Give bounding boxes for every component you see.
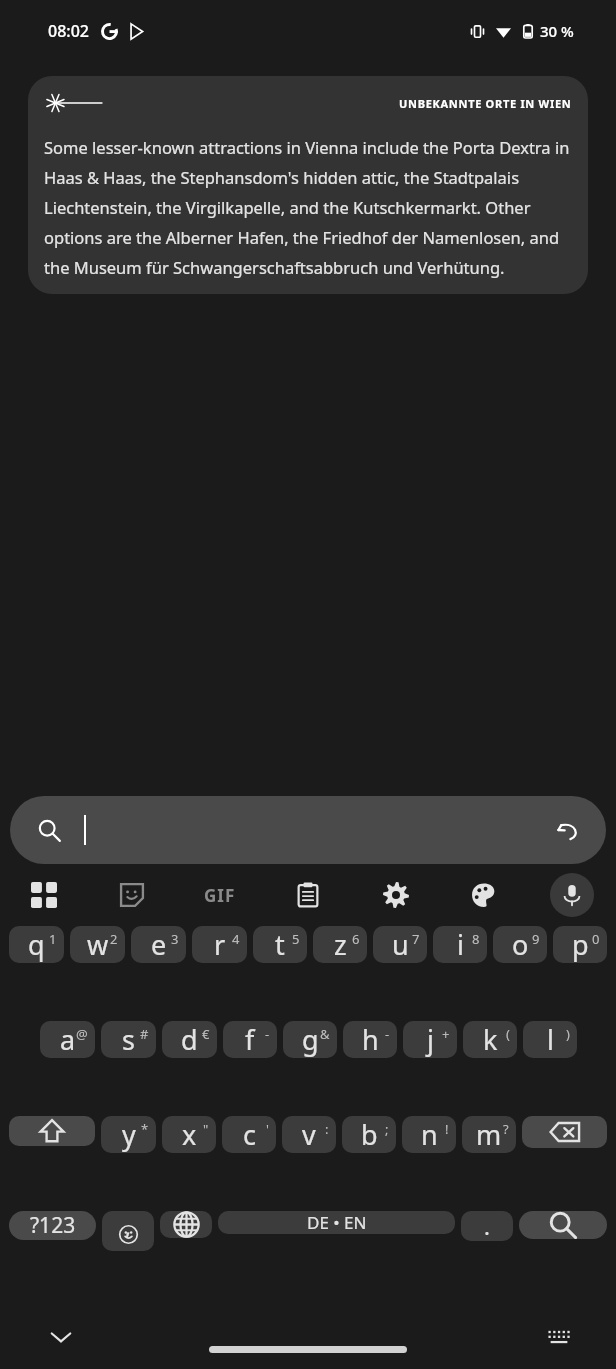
staticText: d: [181, 1021, 198, 1058]
other: Search: [38, 819, 61, 842]
staticText: k: [483, 1021, 498, 1058]
staticText: €: [202, 1025, 210, 1043]
button[interactable]: Shift: [9, 1116, 95, 1146]
button[interactable]: s: [101, 1021, 156, 1058]
button[interactable]: c: [222, 1116, 276, 1153]
button[interactable]: x: [162, 1116, 216, 1153]
staticText: u: [392, 926, 409, 963]
staticText: 7: [412, 930, 420, 948]
staticText: ,: [125, 1211, 131, 1241]
staticText: i: [457, 926, 464, 963]
staticText: f: [245, 1021, 255, 1058]
button[interactable]: Search: [10, 796, 606, 864]
button[interactable]: p: [553, 926, 607, 963]
staticText: @: [76, 1025, 88, 1043]
button[interactable]: Clipboard: [264, 882, 352, 908]
staticText: v: [302, 1116, 316, 1153]
staticText: a: [60, 1021, 76, 1058]
other: Undo: [556, 818, 580, 842]
button[interactable]: ?123: [9, 1211, 96, 1240]
staticText: *: [141, 1120, 149, 1138]
button[interactable]: Apps: [0, 882, 88, 908]
button[interactable]: Themes: [440, 882, 528, 908]
staticText: -: [265, 1025, 270, 1043]
staticText: (: [506, 1025, 510, 1043]
staticText: 08:02: [48, 20, 89, 42]
staticText: w: [87, 926, 109, 963]
staticText: ': [266, 1120, 269, 1138]
staticText: ": [203, 1120, 209, 1138]
staticText: 30 %: [540, 21, 574, 41]
button[interactable]: w: [70, 926, 125, 963]
staticText: !: [445, 1120, 449, 1138]
staticText: DE • EN: [307, 1211, 367, 1234]
button[interactable]: h: [343, 1021, 397, 1058]
button[interactable]: f: [223, 1021, 277, 1058]
staticText: 3: [171, 930, 179, 948]
staticText: ;: [385, 1120, 389, 1138]
button[interactable]: b: [342, 1116, 396, 1153]
staticText: m: [476, 1116, 502, 1153]
staticText: .: [484, 1211, 490, 1241]
button[interactable]: Switch keyboard: [542, 1320, 576, 1354]
staticText: q: [28, 926, 45, 963]
staticText: 5: [292, 930, 300, 948]
button[interactable]: j: [403, 1021, 457, 1058]
button[interactable]: Backspace: [522, 1116, 607, 1148]
button[interactable]: z: [313, 926, 367, 963]
staticText: e: [151, 926, 167, 963]
button[interactable]: d: [162, 1021, 217, 1058]
staticText: o: [512, 926, 529, 963]
button[interactable]: Stickers: [88, 882, 176, 908]
staticText: p: [572, 926, 589, 963]
button[interactable]: Change language: [160, 1211, 212, 1238]
staticText: r: [214, 926, 226, 963]
staticText: ): [566, 1025, 570, 1043]
button[interactable]: a: [40, 1021, 95, 1058]
button[interactable]: Close keyboard: [44, 1320, 78, 1354]
staticText: 2: [110, 930, 118, 948]
staticText: z: [334, 926, 347, 963]
staticText: 4: [232, 930, 240, 948]
staticText: GIF: [204, 884, 236, 907]
button[interactable]: Settings: [352, 882, 440, 908]
button[interactable]: u: [373, 926, 427, 963]
button[interactable]: o: [493, 926, 547, 963]
button[interactable]: k: [463, 1021, 517, 1058]
button[interactable]: v: [282, 1116, 336, 1153]
staticText: #: [140, 1025, 149, 1043]
button[interactable]: m: [462, 1116, 516, 1153]
button[interactable]: .: [461, 1211, 513, 1241]
staticText: t: [275, 926, 285, 963]
button[interactable]: q: [9, 926, 64, 963]
staticText: j: [427, 1021, 434, 1058]
button[interactable]: r: [192, 926, 247, 963]
staticText: x: [182, 1116, 197, 1153]
button[interactable]: i: [433, 926, 487, 963]
staticText: &: [320, 1025, 330, 1043]
staticText: h: [362, 1021, 379, 1058]
staticText: 0: [592, 930, 600, 948]
button[interactable]: t: [253, 926, 307, 963]
button[interactable]: e: [131, 926, 186, 963]
button[interactable]: DE • EN: [218, 1211, 455, 1234]
button[interactable]: UNBEKANNTE ORTE IN WIEN: [28, 76, 588, 294]
staticText: 9: [532, 930, 540, 948]
staticText: c: [243, 1116, 256, 1153]
button[interactable]: GIF: [176, 884, 264, 907]
staticText: -: [385, 1025, 390, 1043]
button[interactable]: g: [283, 1021, 337, 1058]
staticText: g: [302, 1021, 319, 1058]
staticText: ?: [503, 1120, 509, 1138]
button[interactable]: Voice input: [528, 873, 616, 917]
staticText: UNBEKANNTE ORTE IN WIEN: [399, 96, 572, 111]
button[interactable]: n: [402, 1116, 456, 1153]
staticText: y: [122, 1116, 136, 1153]
button[interactable]: Search: [519, 1211, 607, 1239]
staticText: l: [547, 1021, 554, 1058]
staticText: +: [442, 1025, 450, 1043]
staticText: ?123: [30, 1211, 76, 1240]
button[interactable]: Emoji: [102, 1211, 154, 1251]
button[interactable]: y: [101, 1116, 156, 1153]
button[interactable]: l: [523, 1021, 577, 1058]
